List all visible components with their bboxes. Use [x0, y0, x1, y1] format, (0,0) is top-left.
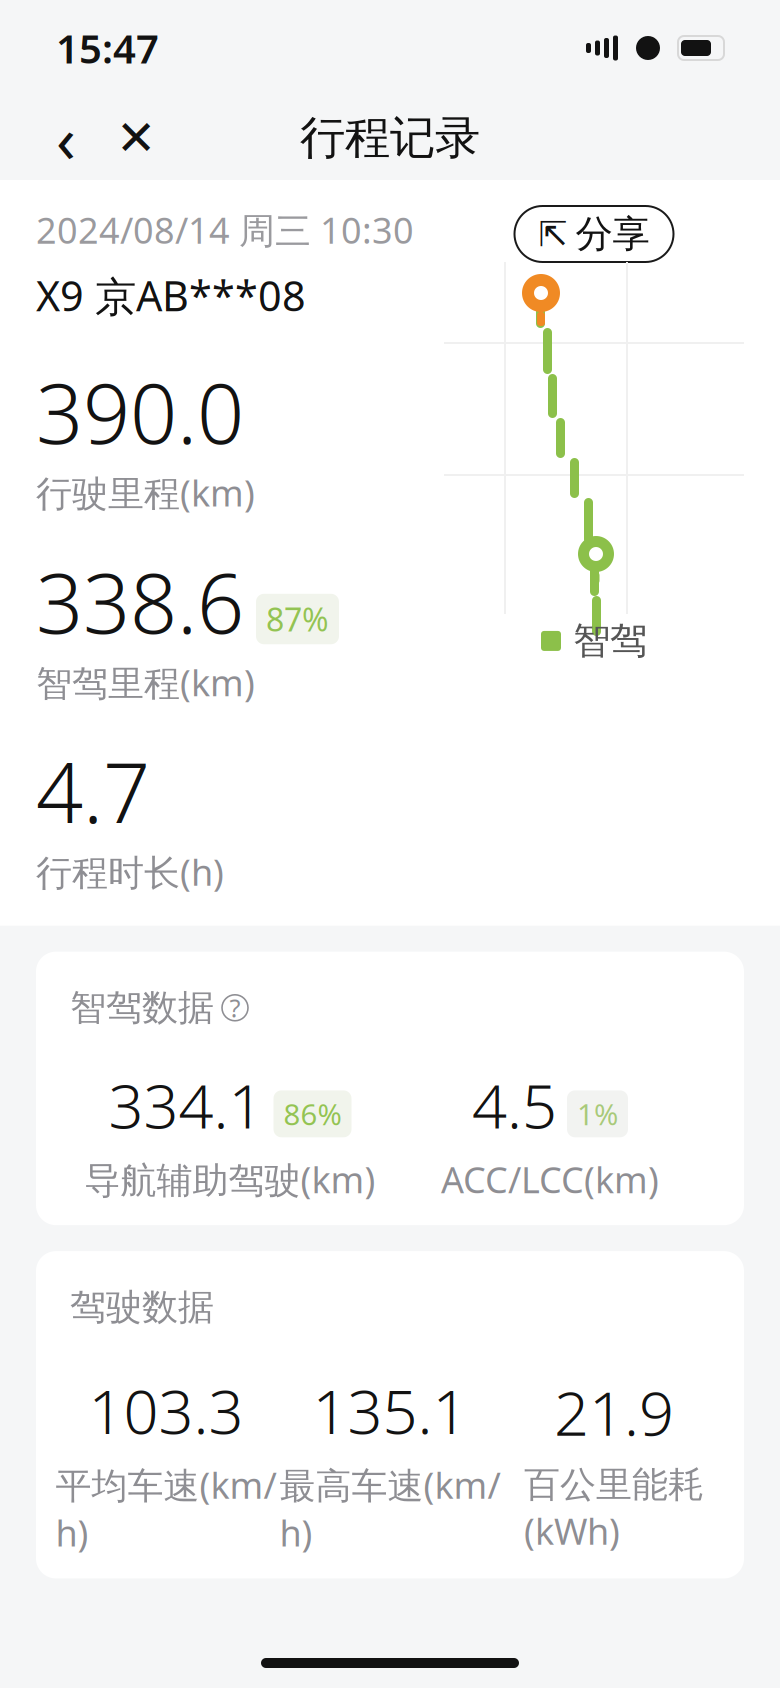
button[interactable]: ⇱ [514, 206, 673, 262]
staticText: ? [229, 991, 240, 1025]
staticText: ✕ [116, 111, 156, 165]
staticText: 1% [577, 1094, 618, 1133]
staticText: 最高车速(km/h) [279, 1461, 500, 1556]
staticText: 21.9 [554, 1371, 674, 1452]
button[interactable]: 说明 [222, 995, 248, 1021]
staticText: 87% [266, 598, 329, 640]
staticText: X9 京AB***08 [36, 268, 306, 323]
staticText: ‹ [56, 95, 76, 180]
staticText: 行程时长(h) [36, 848, 224, 896]
staticText: 导航辅助驾驶(km) [84, 1155, 375, 1203]
staticText: 4.5 [472, 1064, 557, 1145]
staticText: 338.6 [36, 546, 244, 656]
staticText: 103.3 [88, 1369, 243, 1451]
staticText: 390.0 [36, 357, 244, 467]
staticText: 百公里能耗(kWh) [524, 1463, 704, 1555]
staticText: 平均车速(km/h) [55, 1461, 276, 1556]
button[interactable]: 返回 [36, 106, 96, 170]
staticText: 15:47 [56, 21, 159, 74]
staticText: 智驾里程(km) [36, 658, 255, 706]
staticText: 行程记录 [300, 110, 480, 166]
staticText: 86% [283, 1094, 341, 1133]
staticText: 334.1 [108, 1064, 263, 1145]
staticText: 智驾数据 [70, 986, 214, 1030]
staticText: 135.1 [312, 1369, 467, 1451]
staticText: 4.7 [36, 736, 150, 846]
staticText: 智驾 [573, 618, 647, 664]
staticText: 驾驶数据 [70, 1285, 214, 1329]
button[interactable]: 关闭 [106, 106, 166, 170]
staticText: 分享 [575, 211, 649, 257]
staticText: ⇱ [538, 214, 567, 254]
staticText: 2024/08/14 周三 10:30 [36, 206, 414, 254]
staticText: ACC/LCC(km) [441, 1155, 659, 1203]
staticText: 行驶里程(km) [36, 469, 255, 516]
